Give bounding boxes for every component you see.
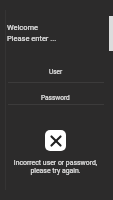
staticText: Incorrect user or password, please try a… [0, 159, 112, 175]
other: Error [45, 130, 66, 151]
button[interactable]: User [0, 65, 113, 79]
staticText: Password [41, 94, 70, 102]
staticText: Please enter ... [7, 34, 57, 43]
staticText: User [49, 68, 63, 76]
staticText: Welcome [7, 23, 39, 32]
button[interactable]: Password [0, 91, 113, 105]
